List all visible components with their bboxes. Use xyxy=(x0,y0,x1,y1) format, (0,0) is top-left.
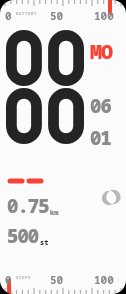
staticText: MO xyxy=(90,38,112,65)
button[interactable]: MO xyxy=(0,30,126,86)
staticText: 0 xyxy=(5,8,12,23)
staticText: km xyxy=(50,208,59,218)
staticText: st xyxy=(40,238,49,248)
staticText: 50 xyxy=(50,8,64,23)
button[interactable]: 0.75 xyxy=(7,193,59,249)
button[interactable]: 06 xyxy=(0,88,126,151)
staticText: 0.75 xyxy=(7,193,49,219)
staticText: BATTERY xyxy=(16,11,37,16)
staticText: 50 xyxy=(50,272,64,287)
staticText: STEPS xyxy=(16,275,31,280)
staticText: 0 xyxy=(5,272,12,287)
staticText: 06 xyxy=(90,93,111,119)
staticText: 100 xyxy=(94,8,114,23)
button[interactable]: Battery scale xyxy=(0,0,126,26)
staticText: 500 xyxy=(7,223,39,249)
button[interactable]: Steps scale xyxy=(0,268,126,294)
staticText: 01 xyxy=(90,125,111,151)
staticText: 100 xyxy=(94,272,114,287)
button[interactable]: Sleep xyxy=(100,189,118,207)
